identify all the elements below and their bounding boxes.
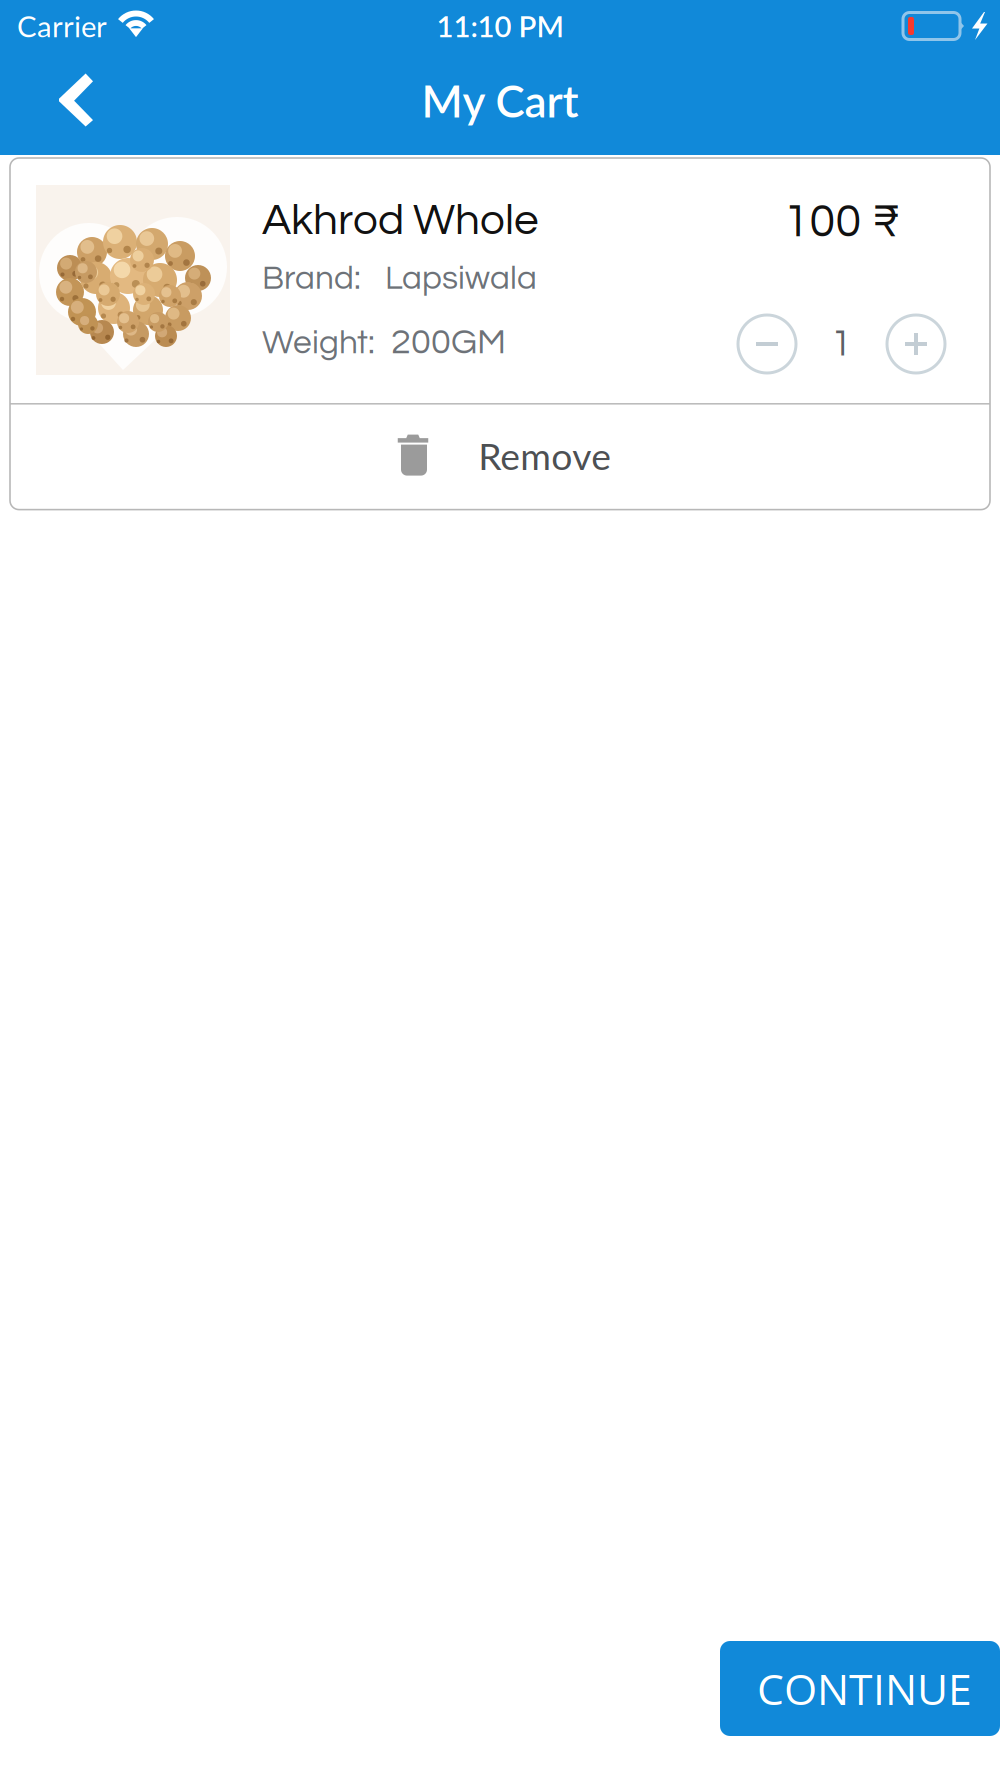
staticText: 1 [831,325,852,363]
staticText: Akhrod Whole [262,198,539,243]
staticText: Remove [478,433,611,478]
button[interactable]: CONTINUE [720,1641,1000,1736]
staticText: 100 ₹ [783,198,899,246]
button[interactable]: Decrease quantity [738,315,796,373]
button[interactable]: Remove [10,405,990,510]
staticText: Brand: [262,261,361,296]
staticText: Weight: [262,326,375,360]
staticText: My Cart [421,74,578,127]
staticText: Lapsiwala [385,261,537,296]
button[interactable]: Increase quantity [887,315,945,373]
staticText: Carrier [17,8,107,44]
staticText: 200GM [391,324,506,361]
button[interactable]: Back [24,58,128,149]
staticText: CONTINUE [757,1659,972,1717]
staticText: 11:10 PM [436,8,563,44]
